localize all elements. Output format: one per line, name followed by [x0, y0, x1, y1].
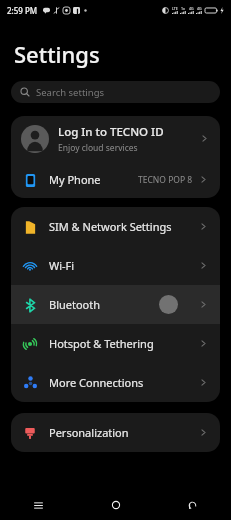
staticText: 2:59 PM	[7, 5, 38, 16]
button[interactable]: Bluetooth	[11, 285, 220, 324]
button[interactable]: Personalization	[11, 413, 220, 452]
staticText: TECNO POP 8	[138, 174, 193, 186]
button[interactable]: My Phone	[11, 161, 220, 198]
button[interactable]: More Connections	[11, 363, 220, 402]
button[interactable]: Hotspot & Tethering	[11, 324, 220, 363]
button[interactable]: Back	[154, 490, 231, 520]
staticText: Search settings	[36, 86, 105, 99]
staticText: 4G	[189, 6, 194, 11]
staticText: SIM & Network Settings	[49, 219, 172, 234]
staticText: 1x	[181, 6, 185, 11]
button[interactable]: Home	[77, 490, 154, 520]
staticText: Wi-Fi	[49, 258, 75, 273]
staticText: Enjoy cloud services	[58, 142, 138, 154]
staticText: More Connections	[49, 375, 144, 390]
staticText: Log In to TECNO ID	[58, 124, 164, 140]
staticText: Personalization	[49, 425, 129, 440]
button[interactable]: Recent apps	[0, 490, 77, 520]
staticText: Bluetooth	[49, 297, 101, 312]
staticText: Hotspot & Tethering	[49, 336, 154, 351]
button[interactable]: Wi-Fi	[11, 246, 220, 285]
button[interactable]: SIM & Network Settings	[11, 207, 220, 246]
staticText: LTE	[172, 6, 178, 11]
button[interactable]: Search settings	[11, 81, 220, 103]
staticText: 4G	[197, 6, 202, 11]
button[interactable]: Log In to TECNO ID	[11, 116, 220, 161]
staticText: My Phone	[49, 172, 101, 187]
staticText: Settings	[14, 39, 100, 69]
